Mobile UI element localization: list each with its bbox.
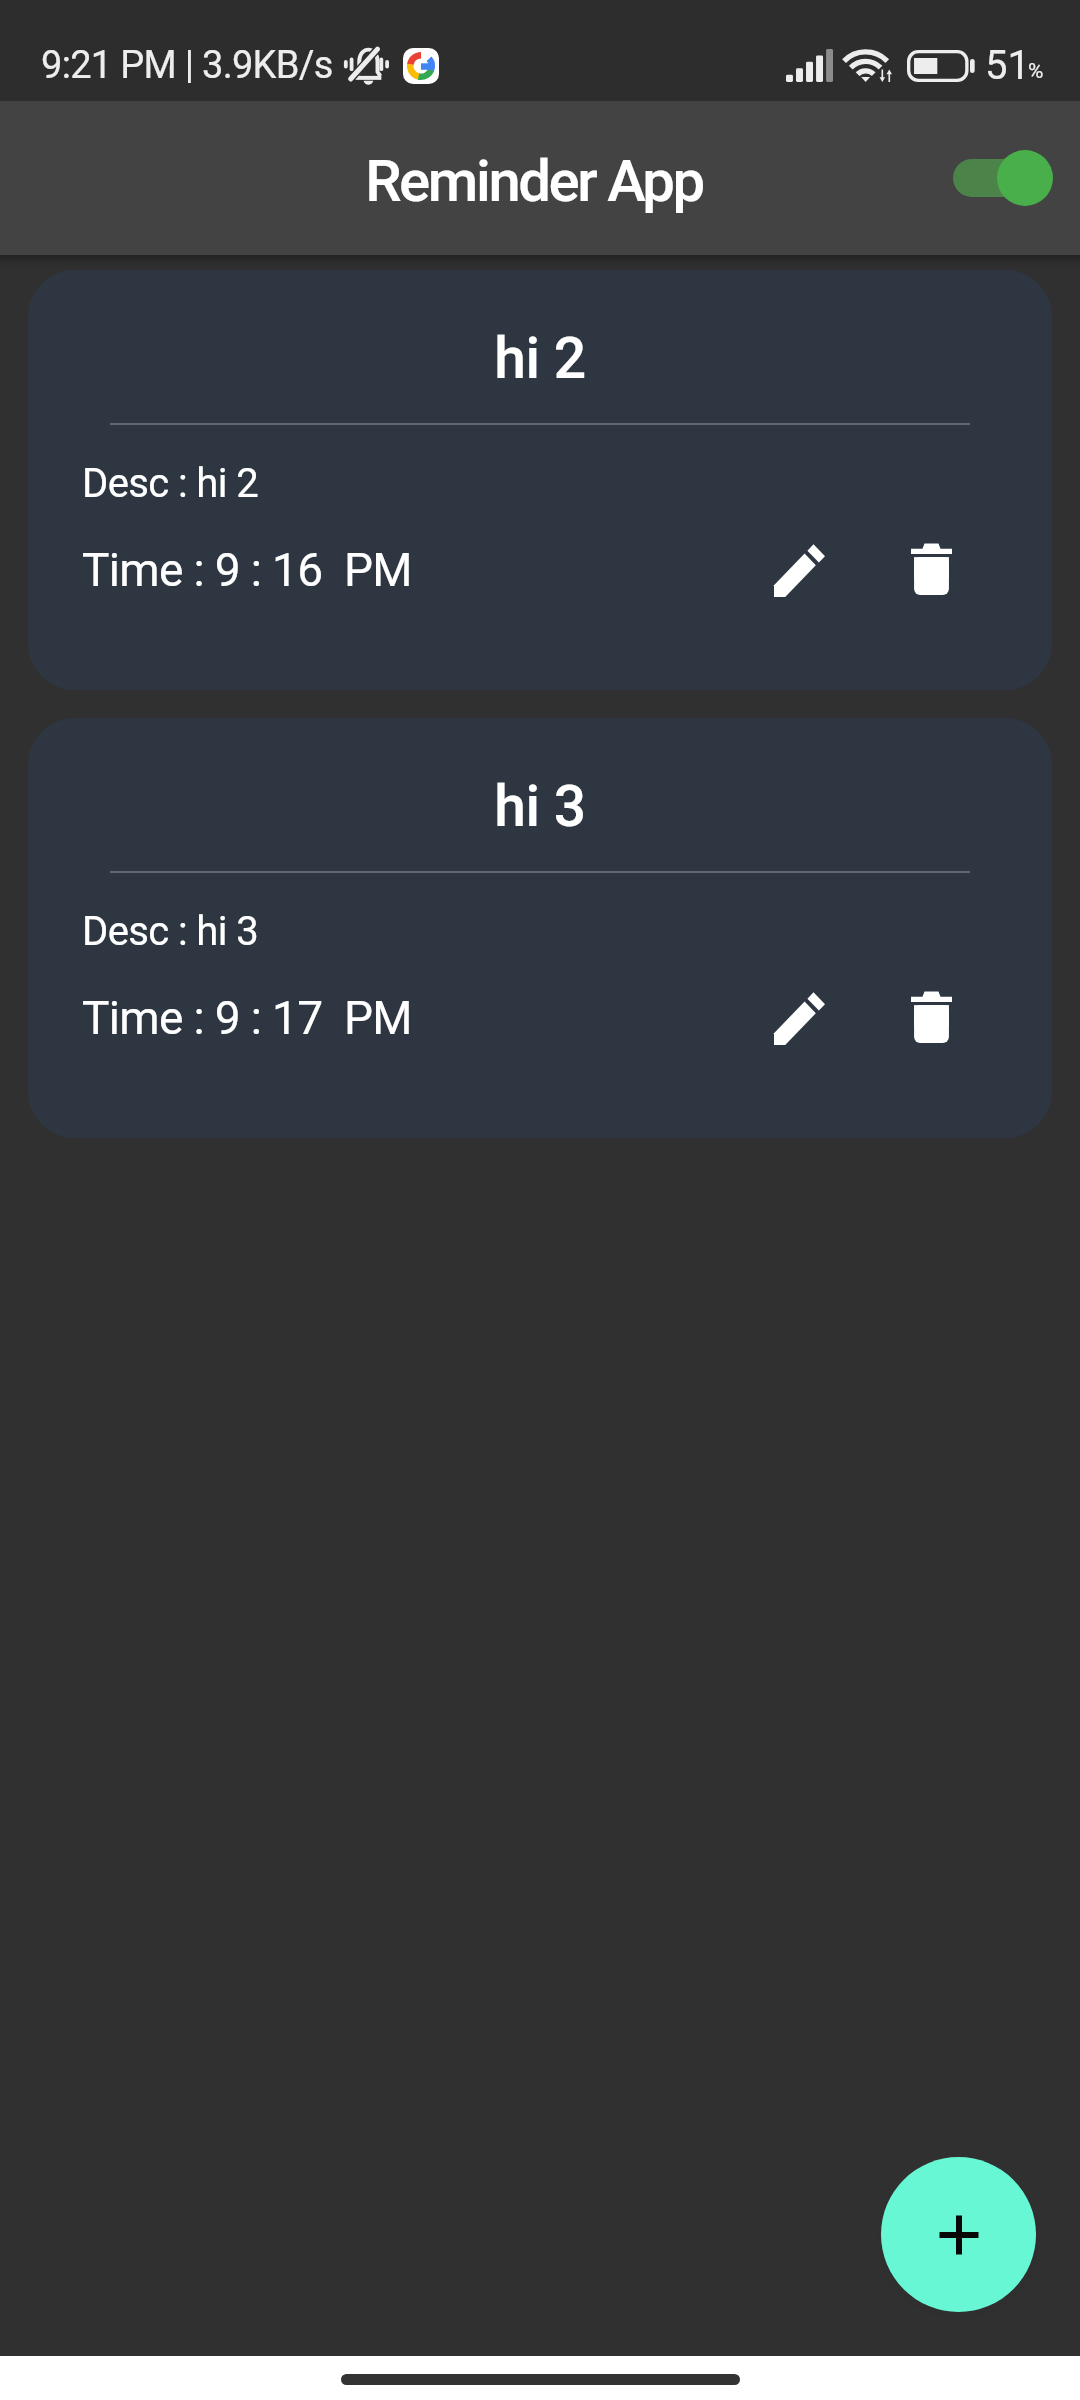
- button[interactable]: hi 2: [28, 270, 1052, 690]
- button[interactable]: Toggle reminders: [953, 132, 1065, 224]
- staticText: 51: [985, 42, 1030, 89]
- button[interactable]: Delete: [889, 526, 973, 610]
- staticText: %: [1028, 59, 1044, 84]
- button[interactable]: Delete: [889, 974, 973, 1058]
- button[interactable]: hi 3: [28, 718, 1052, 1138]
- staticText: 9:21 PM | 3.9KB/s: [41, 43, 333, 88]
- button[interactable]: Add reminder: [881, 2157, 1036, 2312]
- staticText: hi 3: [28, 773, 1052, 840]
- staticText: Desc : hi 3: [82, 908, 259, 955]
- button[interactable]: Edit: [757, 976, 841, 1060]
- button[interactable]: Edit: [757, 528, 841, 612]
- staticText: Desc : hi 2: [82, 460, 259, 507]
- staticText: Reminder App: [365, 147, 703, 215]
- staticText: Time : 9 : 17 PM: [82, 991, 412, 1045]
- staticText: hi 2: [28, 325, 1052, 392]
- staticText: Time : 9 : 16 PM: [82, 543, 412, 597]
